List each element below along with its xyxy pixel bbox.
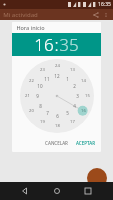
staticText: 16:35 (98, 1, 111, 8)
button[interactable]: Share (91, 10, 100, 19)
staticText: : (54, 33, 59, 56)
staticText: 21 (25, 93, 30, 99)
button[interactable]: Home (50, 184, 64, 198)
staticText: 13 (70, 67, 75, 73)
staticText: 23 (40, 67, 45, 73)
staticText: 24 (55, 63, 60, 69)
staticText: 16 (34, 33, 54, 56)
button[interactable]: ACEPTAR (73, 138, 98, 148)
staticText: 7 (46, 110, 49, 116)
staticText: 35 (59, 33, 79, 56)
staticText: 5 (66, 110, 69, 116)
staticText: 15 (85, 93, 90, 99)
button[interactable]: Back (18, 184, 32, 198)
staticText: 4 (73, 103, 76, 109)
staticText: 1 (66, 76, 69, 82)
staticText: 3 (76, 93, 79, 99)
button[interactable]: More options (102, 11, 110, 19)
button[interactable]: Add (87, 168, 107, 188)
staticText: Mi actividad (3, 11, 38, 19)
staticText: ACEPTAR (76, 140, 95, 146)
staticText: 6 (56, 113, 59, 119)
staticText: 19 (40, 119, 45, 125)
staticText: 11 (44, 76, 50, 82)
button[interactable]: 35 (59, 33, 79, 56)
button[interactable]: Recents (81, 184, 95, 198)
staticText: 22 (29, 78, 34, 84)
staticText: 18 (55, 123, 60, 129)
staticText: 17 (70, 119, 75, 125)
staticText: Hora inicio (16, 24, 45, 31)
button[interactable]: 16 (34, 33, 54, 56)
button[interactable]: 24 (20, 59, 94, 133)
staticText: 14 (81, 78, 86, 84)
button[interactable]: CANCELAR (42, 138, 71, 148)
staticText: 10 (37, 83, 43, 89)
staticText: 2 (73, 83, 76, 89)
staticText: 8 (39, 103, 42, 109)
staticText: 16 (81, 108, 86, 114)
staticText: 9 (36, 93, 39, 99)
staticText: CANCELAR (45, 140, 68, 146)
staticText: 12 (54, 73, 60, 79)
staticText: 20 (29, 108, 34, 114)
